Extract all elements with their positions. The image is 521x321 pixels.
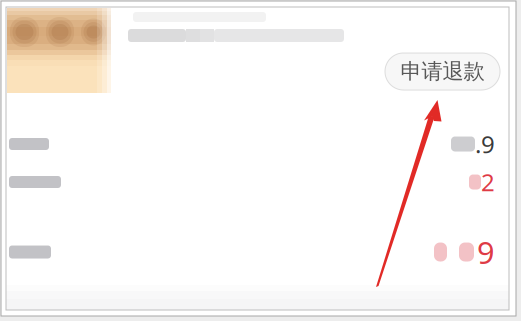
staticText: .9: [475, 128, 495, 160]
button[interactable]: 申请退款: [385, 53, 500, 90]
staticText: 9: [477, 232, 495, 272]
staticText: 申请退款: [400, 58, 484, 85]
staticText: 2: [481, 166, 495, 198]
